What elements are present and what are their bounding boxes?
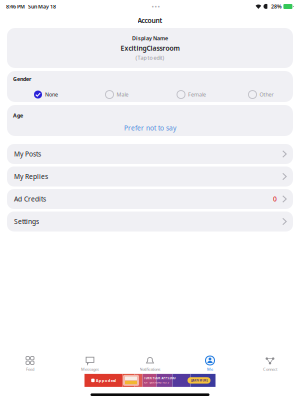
staticText: Appodeal xyxy=(96,378,116,383)
staticText: Settings xyxy=(14,217,39,226)
staticText: (Tap to edit) xyxy=(135,54,164,61)
staticText: Messages xyxy=(81,366,99,372)
staticText: 8:46 PM Sun May 18 xyxy=(6,3,56,10)
staticText: ExcitingClassroom xyxy=(120,44,179,53)
button[interactable]: Me xyxy=(180,356,240,372)
staticText: Other xyxy=(259,91,273,98)
staticText: My Posts xyxy=(14,150,41,158)
button[interactable]: Ad Credits xyxy=(7,189,293,209)
staticText: Feed xyxy=(26,366,34,372)
button[interactable]: Settings xyxy=(7,211,293,231)
button[interactable]: My Posts xyxy=(7,144,293,164)
staticText: My Replies xyxy=(14,172,48,181)
button[interactable]: Female xyxy=(177,90,206,98)
staticText: TURN YOUR APPS INTO xyxy=(143,376,175,380)
staticText: LEARN MORE xyxy=(190,379,207,382)
staticText: None xyxy=(45,91,58,98)
staticText: Notifications xyxy=(139,366,160,372)
button[interactable]: My Replies xyxy=(7,166,293,186)
button[interactable]: Other xyxy=(248,90,273,98)
staticText: 0 xyxy=(273,195,277,203)
staticText: Prefer not to say xyxy=(124,124,176,132)
button[interactable]: Notifications xyxy=(120,356,180,372)
staticText: • • • xyxy=(152,3,160,10)
staticText: Me xyxy=(207,366,213,372)
staticText: TOP EARNING HITS xyxy=(143,381,168,384)
button[interactable]: Appodeal xyxy=(84,374,215,387)
staticText: 28% xyxy=(271,3,282,10)
button[interactable]: Messages xyxy=(60,356,120,372)
staticText: Connect xyxy=(263,366,277,372)
staticText: Account xyxy=(137,16,162,25)
button[interactable]: Feed xyxy=(0,356,60,372)
staticText: Display Name xyxy=(132,35,168,42)
button[interactable]: Connect xyxy=(240,356,300,372)
button[interactable]: Male xyxy=(105,90,128,98)
button[interactable]: None xyxy=(34,90,58,98)
staticText: Female xyxy=(188,91,206,98)
staticText: Ad Credits xyxy=(14,195,46,203)
button[interactable]: Prefer not to say xyxy=(7,124,293,132)
staticText: Male xyxy=(116,91,128,98)
staticText: Gender xyxy=(13,75,31,83)
staticText: Age xyxy=(13,112,23,119)
